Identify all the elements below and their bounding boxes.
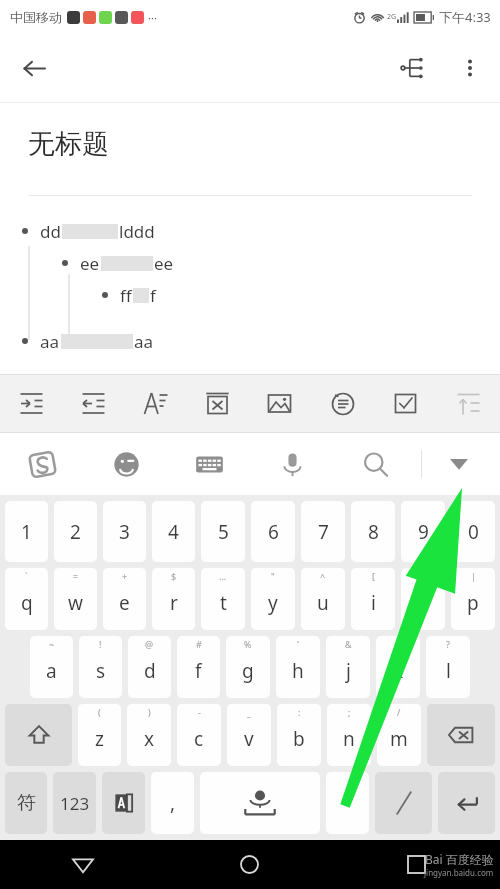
button[interactable]: _ bbox=[227, 704, 271, 766]
button[interactable]: ] bbox=[401, 568, 445, 630]
staticText: ... bbox=[219, 570, 227, 582]
button[interactable]: Space bbox=[200, 772, 320, 834]
button[interactable]: : bbox=[277, 704, 321, 766]
staticText: : bbox=[298, 706, 301, 718]
button[interactable]: ! bbox=[79, 636, 122, 698]
staticText: * bbox=[396, 638, 401, 650]
button[interactable]: ' bbox=[276, 636, 320, 698]
button[interactable]: Cancel bbox=[186, 375, 248, 432]
button[interactable]: / bbox=[377, 704, 421, 766]
staticText: / bbox=[397, 706, 401, 718]
staticText: s bbox=[96, 658, 106, 684]
button[interactable]: Back bbox=[10, 44, 58, 92]
button[interactable]: & bbox=[326, 636, 370, 698]
button[interactable]: " bbox=[251, 568, 295, 630]
button[interactable]: Back bbox=[0, 840, 166, 889]
staticText: c bbox=[194, 726, 204, 752]
staticText: [ bbox=[372, 570, 375, 582]
button[interactable]: ` bbox=[5, 568, 48, 630]
button[interactable]: $ bbox=[152, 568, 195, 630]
button[interactable]: Search bbox=[334, 433, 417, 495]
button[interactable]: Indent bbox=[0, 375, 62, 432]
staticText: r bbox=[170, 590, 178, 616]
button[interactable]: 符 bbox=[5, 772, 47, 834]
button[interactable]: ? bbox=[426, 636, 470, 698]
button[interactable]: Chinese English toggle bbox=[375, 772, 432, 834]
button[interactable]: Home bbox=[166, 840, 333, 889]
staticText: f bbox=[150, 284, 156, 307]
staticText: = bbox=[73, 570, 79, 582]
button[interactable]: , bbox=[151, 772, 194, 834]
button[interactable]: ~ bbox=[30, 636, 73, 698]
staticText: 3 bbox=[119, 519, 130, 545]
button[interactable]: % bbox=[226, 636, 270, 698]
staticText: @ bbox=[145, 638, 154, 650]
staticText: ? bbox=[446, 638, 450, 650]
staticText: ` bbox=[25, 570, 28, 582]
button[interactable]: Enter bbox=[438, 772, 495, 834]
button[interactable]: Outline bbox=[388, 44, 436, 92]
staticText: 下午4:33 bbox=[439, 8, 491, 26]
button[interactable]: 8 bbox=[351, 501, 395, 562]
button[interactable]: Outdent bbox=[62, 375, 124, 432]
button[interactable]: | bbox=[451, 568, 495, 630]
staticText: d bbox=[144, 658, 156, 684]
button[interactable]: Shift bbox=[5, 704, 72, 766]
button[interactable]: · bbox=[326, 772, 369, 834]
staticText: 0 bbox=[468, 519, 479, 545]
button[interactable]: + bbox=[103, 568, 146, 630]
button[interactable]: More options bbox=[446, 44, 494, 92]
staticText: 中国移动 bbox=[10, 9, 62, 25]
staticText: m bbox=[390, 726, 408, 752]
button[interactable]: - bbox=[177, 704, 221, 766]
button[interactable]: Text format bbox=[124, 375, 186, 432]
staticText: n bbox=[343, 726, 355, 752]
staticText: x bbox=[144, 726, 155, 752]
button[interactable]: Input mode bbox=[102, 772, 145, 834]
staticText: k bbox=[393, 658, 404, 684]
button[interactable]: 7 bbox=[301, 501, 345, 562]
staticText: g bbox=[242, 658, 254, 684]
staticText: · bbox=[345, 790, 351, 816]
button[interactable]: Recent apps bbox=[333, 840, 500, 889]
button[interactable]: Emoji bbox=[84, 433, 168, 495]
button[interactable]: Hide keyboard bbox=[417, 433, 500, 495]
button[interactable]: Backspace bbox=[427, 704, 495, 766]
button[interactable]: Insert image bbox=[248, 375, 311, 432]
staticText: ~ bbox=[49, 638, 55, 650]
staticText: w bbox=[68, 590, 83, 616]
button[interactable]: # bbox=[177, 636, 220, 698]
button[interactable]: 123 bbox=[53, 772, 96, 834]
button[interactable]: ^ bbox=[301, 568, 345, 630]
staticText: jingyan.baidu.com bbox=[424, 867, 494, 878]
button[interactable]: Voice input bbox=[251, 433, 334, 495]
button[interactable]: Checklist bbox=[374, 375, 437, 432]
button[interactable]: [ bbox=[351, 568, 395, 630]
staticText: Bai 百度经验 bbox=[425, 851, 494, 867]
button[interactable]: Collapse bbox=[437, 375, 500, 432]
button[interactable]: Sogou bbox=[0, 433, 84, 495]
button[interactable]: 6 bbox=[251, 501, 295, 562]
button[interactable]: = bbox=[54, 568, 97, 630]
staticText: 8 bbox=[368, 519, 379, 545]
button[interactable]: 9 bbox=[401, 501, 445, 562]
button[interactable]: 0 bbox=[451, 501, 495, 562]
staticText: f bbox=[195, 658, 202, 684]
button[interactable]: 3 bbox=[103, 501, 146, 562]
button[interactable]: 2 bbox=[54, 501, 97, 562]
staticText: & bbox=[345, 638, 352, 650]
button[interactable]: ... bbox=[201, 568, 245, 630]
button[interactable]: Keyboard bbox=[168, 433, 251, 495]
staticText: z bbox=[95, 726, 104, 752]
button[interactable]: ( bbox=[78, 704, 121, 766]
staticText: % bbox=[244, 638, 252, 650]
button[interactable]: ; bbox=[327, 704, 371, 766]
button[interactable]: @ bbox=[128, 636, 171, 698]
button[interactable]: 4 bbox=[152, 501, 195, 562]
button[interactable]: * bbox=[376, 636, 420, 698]
button[interactable]: 1 bbox=[5, 501, 48, 562]
button[interactable]: Comment bbox=[311, 375, 374, 432]
button[interactable]: 5 bbox=[201, 501, 245, 562]
staticText: dd bbox=[40, 220, 61, 243]
button[interactable]: ) bbox=[127, 704, 171, 766]
